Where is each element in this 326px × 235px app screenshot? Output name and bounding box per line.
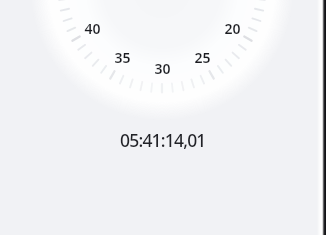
staticText: 30 <box>154 59 171 78</box>
staticText: 20 <box>224 19 241 38</box>
staticText: 05:41:14,01 <box>120 128 206 152</box>
staticText: 25 <box>194 48 211 67</box>
staticText: 35 <box>114 48 131 67</box>
staticText: 40 <box>84 19 101 38</box>
